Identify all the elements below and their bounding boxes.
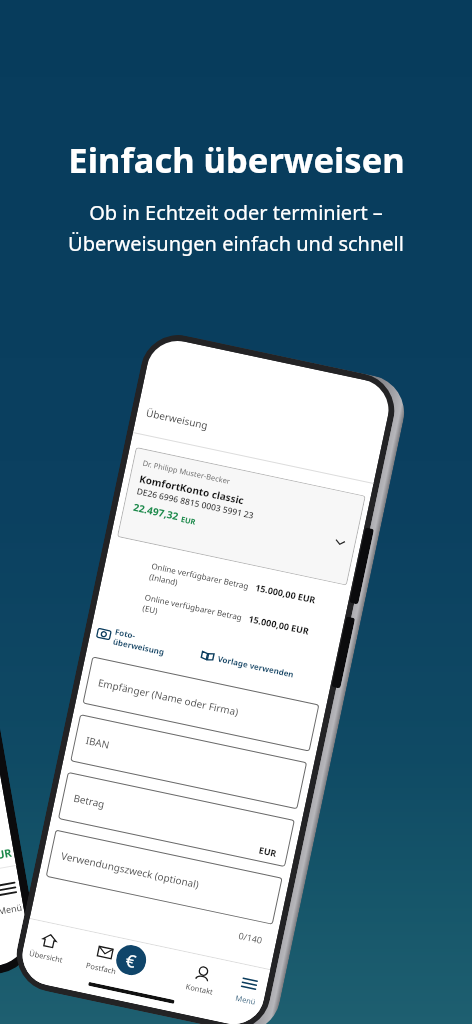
staticText: (Inland) <box>148 571 179 587</box>
staticText: Postfach <box>85 960 118 976</box>
button[interactable]: Neue Überweisung <box>113 942 149 978</box>
staticText: Betrag <box>72 791 106 811</box>
button[interactable]: Foto- überweisung <box>95 622 168 657</box>
staticText: 15.000,00 EUR <box>248 612 311 637</box>
staticText: IBAN <box>84 733 111 752</box>
button[interactable]: Verwendungszweck (optional) <box>46 830 283 925</box>
button[interactable]: Menü <box>0 877 23 917</box>
staticText: Übersicht <box>28 948 64 965</box>
staticText: KomfortKonto classic <box>138 471 246 507</box>
staticText: Ob in Echtzeit oder terminiert – Überwei… <box>68 199 404 256</box>
staticText: 0/140 <box>237 929 263 946</box>
button[interactable]: Empfänger (Name oder Firma) <box>82 656 319 752</box>
staticText: Kontakt <box>185 981 214 997</box>
button[interactable]: Postfach <box>82 941 124 977</box>
staticText: (EU) <box>142 602 159 616</box>
button[interactable]: Kontakt <box>182 962 221 997</box>
staticText: Empfänger (Name oder Firma) <box>97 675 241 719</box>
staticText: Überweisung <box>145 405 209 432</box>
staticText: Menü <box>0 901 23 917</box>
staticText: EUR <box>258 843 278 859</box>
staticText: 15.000,00 EUR <box>254 581 317 605</box>
staticText: Menü <box>235 993 257 1007</box>
button[interactable]: IBAN <box>70 714 307 809</box>
staticText: Vorlage verwenden <box>217 653 295 680</box>
staticText: Foto- überweisung <box>112 626 168 657</box>
staticText: Verwendungszweck (optional) <box>60 848 201 891</box>
staticText: Online verfügbarer Betrag <box>151 560 250 591</box>
staticText: Online verfügbarer Betrag <box>144 591 243 622</box>
button[interactable]: Vorlage verwenden <box>200 648 295 681</box>
staticText: EUR <box>0 845 13 863</box>
button[interactable]: Menü <box>232 973 264 1008</box>
staticText: € <box>124 948 138 973</box>
staticText: Einfach überweisen <box>68 136 405 183</box>
button[interactable]: Betrag <box>58 772 295 867</box>
staticText: EUR <box>180 514 197 527</box>
staticText: DE26 6996 8815 0003 5991 23 <box>136 485 255 522</box>
staticText: 22.497,32 <box>132 500 180 523</box>
button[interactable]: Übersicht <box>25 929 71 965</box>
button[interactable]: Dr. Philipp Muster-Becker <box>117 447 366 586</box>
staticText: Dr. Philipp Muster-Becker <box>142 458 232 486</box>
